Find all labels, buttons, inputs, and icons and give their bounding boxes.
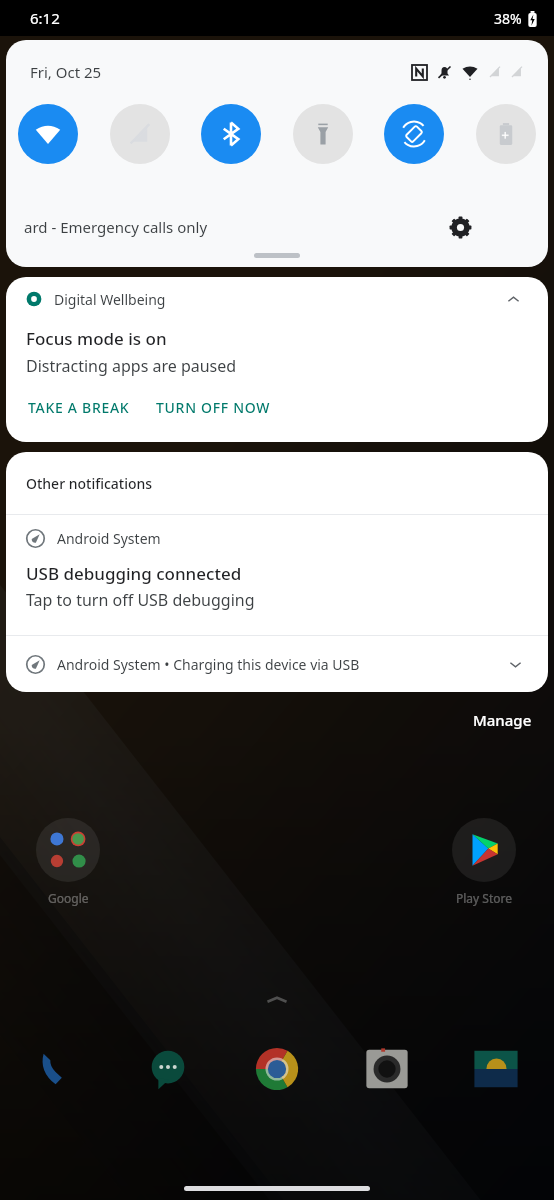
staticText: Android System xyxy=(57,529,161,548)
button[interactable]: Android System xyxy=(6,515,548,635)
staticText: 38% xyxy=(494,9,522,28)
button[interactable]: TAKE A BREAK xyxy=(26,395,132,420)
staticText: Google xyxy=(48,890,89,906)
staticText: Fri, Oct 25 xyxy=(30,62,102,82)
button[interactable]: Other notifications xyxy=(6,452,548,514)
staticText: Focus mode is on xyxy=(26,327,167,350)
staticText: Android System • Charging this device vi… xyxy=(57,655,360,674)
button[interactable]: Bluetooth xyxy=(201,104,261,164)
button[interactable]: Wi-Fi xyxy=(18,104,78,164)
button[interactable]: Mobile data xyxy=(110,104,170,164)
button[interactable]: Manage xyxy=(471,708,534,732)
button[interactable]: Auto rotate xyxy=(384,104,444,164)
staticText: Distracting apps are paused xyxy=(26,355,237,377)
button[interactable]: Digital Wellbeing xyxy=(6,277,548,442)
staticText: Digital Wellbeing xyxy=(54,290,166,309)
staticText: USB debugging connected xyxy=(26,562,242,585)
staticText: 6:12 xyxy=(30,8,60,28)
staticText: TAKE A BREAK xyxy=(28,398,130,417)
staticText: Tap to turn off USB debugging xyxy=(26,589,255,611)
staticText: Other notifications xyxy=(26,474,153,493)
staticText: ard - Emergency calls only xyxy=(24,217,208,237)
button[interactable]: Collapse xyxy=(498,284,528,314)
staticText: Manage xyxy=(473,710,532,730)
button[interactable]: Battery saver xyxy=(476,104,536,164)
button[interactable]: Expand xyxy=(500,649,530,679)
button[interactable]: Android System • Charging this device vi… xyxy=(6,636,548,692)
button[interactable]: TURN OFF NOW xyxy=(154,395,273,420)
staticText: TURN OFF NOW xyxy=(156,398,271,417)
staticText: Play Store xyxy=(456,890,512,906)
button[interactable]: Fri, Oct 25 xyxy=(30,62,102,82)
button[interactable]: Flashlight xyxy=(293,104,353,164)
button[interactable]: Settings xyxy=(442,209,478,245)
